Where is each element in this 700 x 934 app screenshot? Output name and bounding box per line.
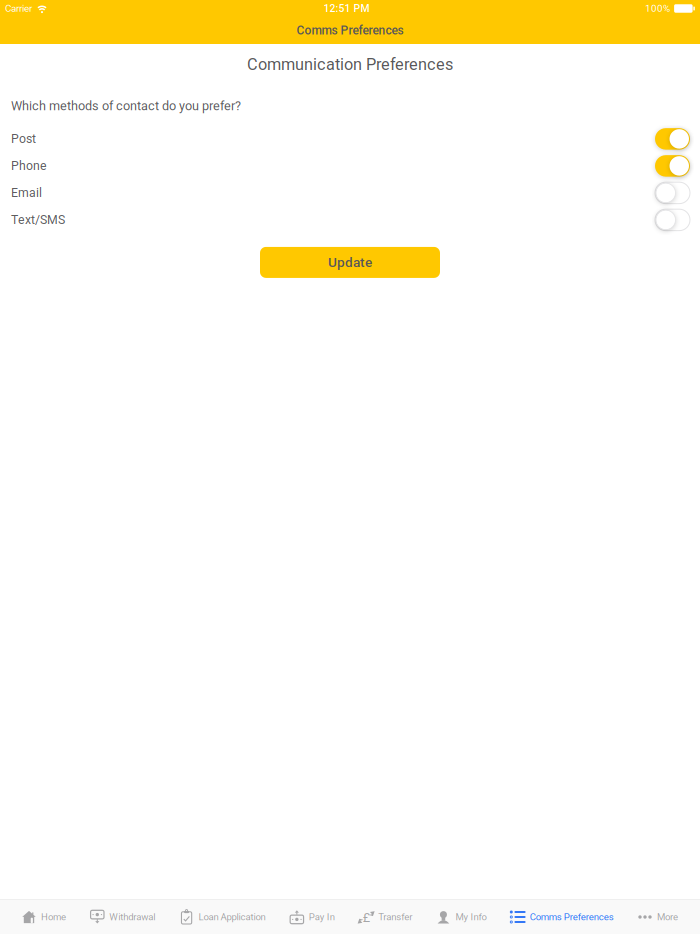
staticText: Post bbox=[11, 132, 36, 146]
button[interactable]: Comms Preferences bbox=[508, 900, 617, 934]
staticText: Home bbox=[41, 911, 66, 923]
staticText: Communication Preferences bbox=[247, 55, 453, 74]
staticText: More bbox=[657, 911, 678, 923]
button[interactable]: Home bbox=[19, 900, 69, 934]
staticText: Loan Application bbox=[199, 911, 266, 923]
staticText: Comms Preferences bbox=[530, 911, 614, 923]
staticText: Update bbox=[328, 254, 372, 270]
staticText: Email bbox=[11, 186, 42, 200]
staticText: Text/SMS bbox=[11, 213, 65, 227]
staticText: Pay In bbox=[309, 911, 335, 923]
staticText: Withdrawal bbox=[109, 911, 155, 923]
button[interactable]: £ bbox=[356, 900, 415, 934]
button[interactable]: Pay In bbox=[287, 900, 338, 934]
staticText: £ bbox=[363, 910, 370, 925]
staticText: Transfer bbox=[378, 911, 412, 923]
staticText: Comms Preferences bbox=[296, 23, 403, 38]
staticText: Phone bbox=[11, 159, 47, 173]
staticText: Which methods of contact do you prefer? bbox=[11, 99, 241, 113]
staticText: 100% bbox=[645, 3, 670, 14]
button[interactable]: Loan Application bbox=[177, 900, 269, 934]
button[interactable]: Email contact preference toggle bbox=[655, 182, 690, 204]
staticText: My Info bbox=[455, 911, 486, 923]
button[interactable]: Withdrawal bbox=[87, 900, 158, 934]
button[interactable]: Text/SMS contact preference toggle bbox=[655, 209, 690, 231]
button[interactable]: More bbox=[635, 900, 681, 934]
button[interactable]: Post contact preference toggle bbox=[655, 128, 690, 150]
button[interactable]: My Info bbox=[433, 900, 489, 934]
staticText: Carrier bbox=[5, 3, 32, 14]
button[interactable]: Phone contact preference toggle bbox=[655, 155, 690, 177]
staticText: 12:51 PM bbox=[324, 2, 370, 15]
button[interactable]: Update bbox=[260, 247, 440, 278]
